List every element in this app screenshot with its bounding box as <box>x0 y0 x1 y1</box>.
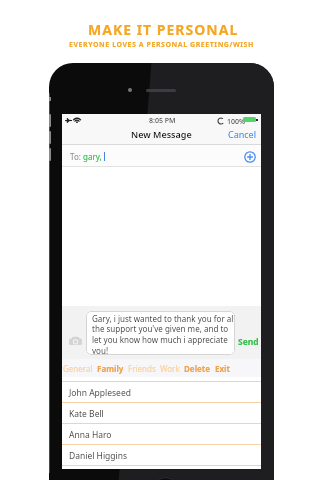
button[interactable]: Send <box>238 336 259 348</box>
button[interactable]: Attach photo <box>69 336 82 346</box>
button[interactable]: Add recipient <box>244 151 256 163</box>
staticText: 8:05 PM <box>149 116 176 126</box>
button[interactable]: Daniel Higgins <box>62 445 261 465</box>
staticText: Daniel Higgins <box>69 450 128 462</box>
button[interactable]: Work <box>158 363 182 374</box>
staticText: Gary, i just wanted to thank you for all… <box>92 313 235 355</box>
button[interactable]: Anna Haro <box>62 424 261 444</box>
staticText: Exit <box>215 363 230 374</box>
button[interactable]: Kate Bell <box>62 403 261 423</box>
staticText: Kate Bell <box>69 408 104 420</box>
staticText: To: <box>70 151 83 162</box>
staticText: General <box>63 363 93 374</box>
staticText: Family <box>97 363 124 374</box>
button[interactable]: General <box>61 363 95 374</box>
button[interactable]: Friends <box>126 363 158 374</box>
button[interactable]: Family <box>95 363 126 374</box>
staticText: Work <box>160 363 180 374</box>
staticText: New Message <box>131 128 192 140</box>
button[interactable]: Delete <box>182 363 213 374</box>
staticText: Friends <box>128 363 156 374</box>
staticText: EVERYONE LOVES A PERSONAL GREETING/WISH <box>69 40 254 50</box>
staticText: Cancel <box>228 128 257 140</box>
staticText: John Appleseed <box>69 387 131 399</box>
staticText: gary, <box>83 151 102 162</box>
staticText: Anna Haro <box>69 429 112 441</box>
staticText: Delete <box>184 363 211 374</box>
staticText: MAKE IT PERSONAL <box>88 20 239 39</box>
staticText: Send <box>238 336 259 348</box>
button[interactable]: Cancel <box>223 126 261 142</box>
button[interactable]: John Appleseed <box>62 382 261 402</box>
button[interactable]: Exit <box>213 363 232 374</box>
staticText: 100% <box>227 117 245 127</box>
